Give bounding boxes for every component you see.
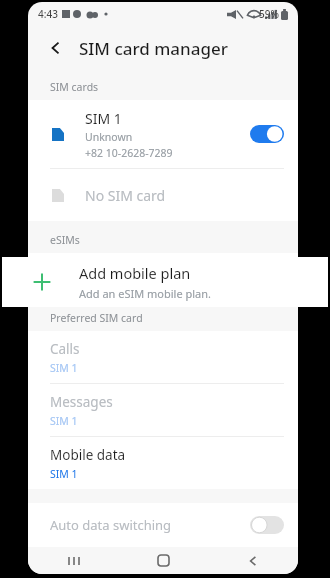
button[interactable]: Back (44, 36, 68, 60)
button[interactable]: Toggle off (250, 516, 284, 534)
button[interactable]: Auto data switching (28, 503, 298, 547)
button[interactable]: Toggle on (250, 125, 284, 143)
staticText: +82 10-2628-7289 (85, 146, 173, 160)
button[interactable]: Mobile data (28, 437, 298, 489)
button[interactable]: Back (208, 547, 298, 574)
staticText: Unknown (85, 130, 133, 144)
staticText: Auto data switching (50, 516, 172, 534)
button[interactable]: No SIM card (28, 169, 298, 221)
staticText: SIM 1 (50, 414, 78, 428)
staticText: No SIM card (85, 186, 166, 205)
staticText: 59% (259, 7, 279, 21)
staticText: SIM cards (50, 80, 99, 94)
staticText: Mobile data (50, 446, 126, 464)
staticText: Add an eSIM mobile plan. (79, 286, 212, 301)
staticText: Preferred SIM card (50, 311, 143, 325)
button[interactable]: Home (118, 547, 208, 574)
button[interactable]: Messages (28, 384, 298, 436)
staticText: Add mobile plan (79, 263, 191, 283)
button[interactable]: Add mobile plan (2, 257, 328, 307)
staticText: SIM 1 (85, 109, 122, 128)
staticText: Messages (50, 393, 113, 411)
staticText: SIM card manager (79, 37, 228, 60)
staticText: eSIMs (50, 233, 80, 247)
button[interactable]: SIM 1 (28, 100, 298, 168)
staticText: 4:43 (38, 7, 58, 21)
button[interactable]: Recents (28, 547, 118, 574)
button[interactable]: Calls (28, 331, 298, 383)
staticText: SIM 1 (50, 467, 78, 481)
staticText: Calls (50, 340, 80, 358)
staticText: SIM 1 (50, 361, 78, 375)
